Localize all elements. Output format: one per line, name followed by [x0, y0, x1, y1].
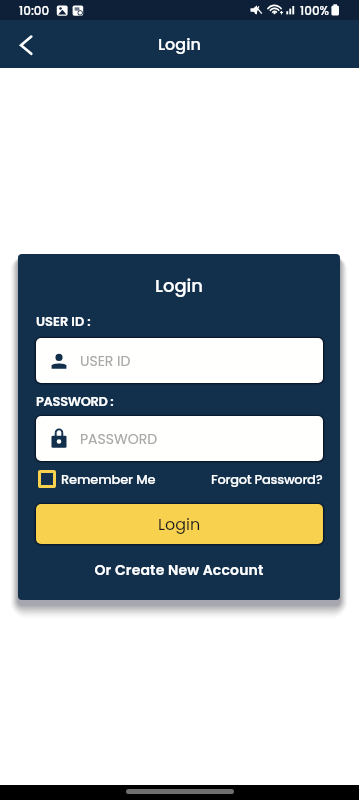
staticText: USER ID — [80, 351, 131, 371]
button[interactable]: Back — [10, 28, 42, 60]
staticText: 10:00 — [19, 2, 50, 19]
staticText: Remember Me — [61, 470, 156, 488]
staticText: PASSWORD — [80, 429, 158, 449]
button[interactable]: Login — [36, 504, 323, 544]
button[interactable]: Remember Me — [36, 470, 156, 488]
staticText: PASSWORD : — [36, 392, 114, 410]
button[interactable]: USER ID — [36, 338, 323, 383]
button[interactable]: PASSWORD — [36, 416, 323, 461]
staticText: Login — [18, 273, 340, 298]
button[interactable]: Forgot Password? — [211, 470, 323, 488]
staticText: 100% — [300, 2, 330, 19]
staticText: Login — [158, 513, 201, 535]
staticText: USER ID : — [36, 312, 91, 330]
button[interactable]: Or Create New Account — [18, 560, 340, 580]
staticText: Login — [158, 33, 201, 55]
